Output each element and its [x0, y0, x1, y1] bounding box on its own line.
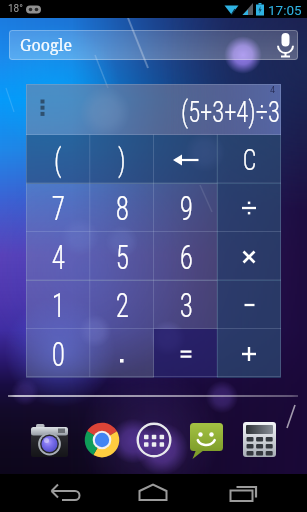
button[interactable]: 7 [26, 183, 90, 232]
staticText: C [243, 142, 256, 177]
staticText: 17:05 [268, 2, 302, 18]
staticText: 3 [180, 285, 193, 325]
button[interactable]: 6 [154, 232, 218, 281]
button[interactable]: 9 [154, 183, 218, 232]
staticText: 6 [180, 237, 193, 277]
button[interactable]: 8 [90, 183, 154, 232]
staticText: 18° [8, 3, 23, 15]
button[interactable] [217, 232, 281, 281]
button[interactable]: C [217, 135, 281, 184]
staticText: Google [20, 34, 73, 56]
button[interactable] [217, 329, 281, 378]
button[interactable]: 3 [154, 280, 218, 329]
staticText: 7 [52, 188, 65, 228]
staticText: 0 [52, 334, 65, 374]
staticText: ( [54, 141, 62, 179]
button[interactable] [25, 415, 73, 465]
button[interactable] [130, 415, 178, 465]
staticText: 4 [52, 237, 65, 277]
staticText: 4 [270, 85, 276, 96]
button[interactable]: 0 [26, 329, 90, 378]
staticText: ) [118, 141, 126, 179]
button[interactable]: 2 [90, 280, 154, 329]
button[interactable]: 1 [26, 280, 90, 329]
button[interactable] [90, 329, 154, 378]
staticText: 5 [116, 237, 129, 277]
button[interactable]: Google [9, 30, 298, 60]
button[interactable] [78, 415, 126, 465]
staticText: 9 [180, 188, 193, 228]
button[interactable]: ( [26, 135, 90, 184]
button[interactable] [132, 476, 168, 510]
button[interactable]: 5 [90, 232, 154, 281]
button[interactable] [154, 135, 218, 184]
button[interactable]: ) [90, 135, 154, 184]
button[interactable] [154, 329, 218, 378]
button[interactable] [182, 415, 230, 465]
staticText: (5+3+4)÷3 [181, 94, 280, 129]
staticText: 1 [52, 285, 65, 325]
staticText: 2 [116, 285, 129, 325]
button[interactable] [217, 280, 281, 329]
button[interactable]: 4 [26, 232, 90, 281]
button[interactable] [217, 183, 281, 232]
button[interactable] [262, 30, 298, 60]
button[interactable] [235, 415, 283, 465]
button[interactable] [222, 476, 258, 510]
button[interactable] [45, 476, 81, 510]
staticText: 8 [116, 188, 129, 228]
